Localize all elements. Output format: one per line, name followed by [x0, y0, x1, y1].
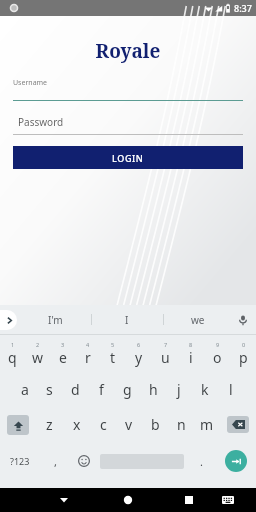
button[interactable]: Switch keyboard: [216, 488, 240, 512]
button[interactable]: a: [12, 372, 37, 407]
staticText: 8: [189, 341, 193, 348]
button[interactable]: k: [192, 372, 218, 407]
staticText: x: [73, 415, 81, 434]
button[interactable]: Voice input: [230, 307, 256, 333]
staticText: t: [110, 348, 116, 367]
button[interactable]: Password: [13, 113, 243, 135]
button[interactable]: Username: [13, 78, 243, 101]
button[interactable]: Recents: [177, 488, 201, 512]
button[interactable]: h: [140, 372, 166, 407]
staticText: g: [123, 380, 132, 399]
button[interactable]: n: [168, 407, 194, 442]
staticText: 5: [111, 341, 115, 348]
staticText: 4: [86, 341, 90, 348]
button[interactable]: Enter: [216, 442, 256, 480]
button[interactable]: c: [90, 407, 116, 442]
button[interactable]: ?123: [0, 442, 40, 480]
button[interactable]: Back: [52, 488, 76, 512]
staticText: 6: [137, 341, 141, 348]
button[interactable]: 7: [152, 335, 178, 372]
staticText: l: [229, 380, 233, 399]
button[interactable]: we: [172, 305, 224, 334]
staticText: j: [177, 380, 181, 399]
button[interactable]: LOGIN: [13, 146, 243, 169]
staticText: f: [99, 380, 104, 399]
button[interactable]: Emoji: [70, 442, 98, 480]
button[interactable]: l: [218, 372, 244, 407]
staticText: 3: [61, 341, 65, 348]
button[interactable]: x: [63, 407, 90, 442]
button[interactable]: I: [101, 305, 153, 334]
button[interactable]: z: [36, 407, 63, 442]
staticText: a: [21, 380, 29, 399]
staticText: Royale: [0, 38, 256, 64]
staticText: d: [71, 380, 80, 399]
button[interactable]: f: [88, 372, 114, 407]
staticText: 2: [36, 341, 40, 348]
button[interactable]: Home: [116, 488, 140, 512]
staticText: ,: [54, 454, 57, 469]
button[interactable]: Period: [186, 442, 216, 480]
staticText: 0: [242, 341, 246, 348]
staticText: I: [125, 313, 129, 327]
staticText: o: [213, 348, 222, 367]
button[interactable]: 5: [100, 335, 126, 372]
button[interactable]: s: [37, 372, 62, 407]
staticText: we: [191, 313, 205, 327]
staticText: k: [201, 380, 209, 399]
staticText: m: [200, 415, 214, 434]
staticText: LOGIN: [112, 152, 144, 164]
button[interactable]: 8: [178, 335, 204, 372]
staticText: w: [32, 348, 44, 367]
button[interactable]: v: [116, 407, 142, 442]
button[interactable]: d: [62, 372, 88, 407]
staticText: r: [85, 348, 91, 367]
staticText: h: [149, 380, 158, 399]
button[interactable]: 9: [204, 335, 230, 372]
button[interactable]: 3: [50, 335, 75, 372]
staticText: 8:37: [234, 2, 252, 14]
staticText: ?123: [10, 455, 30, 467]
staticText: b: [151, 415, 160, 434]
staticText: p: [239, 348, 248, 367]
button[interactable]: Backspace: [220, 407, 256, 442]
staticText: i: [189, 348, 193, 367]
button[interactable]: g: [114, 372, 140, 407]
staticText: .: [200, 454, 203, 469]
staticText: 1: [11, 341, 15, 348]
button[interactable]: 0: [230, 335, 256, 372]
button[interactable]: 1: [0, 335, 25, 372]
button[interactable]: Shift: [0, 407, 36, 442]
button[interactable]: m: [194, 407, 220, 442]
staticText: Username: [13, 78, 48, 88]
button[interactable]: j: [166, 372, 192, 407]
staticText: v: [125, 415, 133, 434]
staticText: 7: [164, 341, 168, 348]
button[interactable]: 4: [75, 335, 100, 372]
staticText: u: [161, 348, 170, 367]
staticText: Password: [18, 115, 64, 129]
button[interactable]: I'm: [29, 305, 81, 334]
staticText: y: [135, 348, 143, 367]
staticText: z: [46, 415, 53, 434]
staticText: c: [100, 415, 107, 434]
button[interactable]: 6: [126, 335, 152, 372]
staticText: s: [46, 380, 53, 399]
button[interactable]: 2: [25, 335, 50, 372]
staticText: I'm: [48, 313, 63, 327]
staticText: n: [177, 415, 186, 434]
button[interactable]: b: [142, 407, 168, 442]
staticText: 9: [216, 341, 220, 348]
button[interactable]: Expand suggestions: [0, 310, 17, 330]
button[interactable]: Comma: [40, 442, 70, 480]
staticText: q: [8, 348, 17, 367]
staticText: e: [59, 348, 67, 367]
